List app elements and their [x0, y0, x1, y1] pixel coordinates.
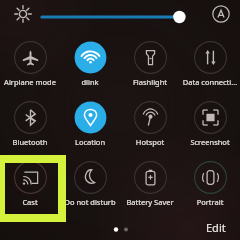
button[interactable]: Edit [202, 217, 230, 238]
button[interactable]: Brightness slider [40, 0, 205, 34]
staticText: Cast [0, 197, 60, 207]
button[interactable]: Location [60, 101, 120, 157]
staticText: Edit [206, 220, 226, 235]
button[interactable]: Portrait [180, 161, 240, 217]
button[interactable]: dlink [60, 41, 120, 97]
staticText: Data connecti… [180, 77, 240, 87]
staticText: Airplane mode [0, 77, 60, 87]
staticText: Do not disturb [60, 197, 120, 207]
staticText: Screenshot [180, 137, 240, 147]
button[interactable]: Brightness [10, 1, 36, 27]
staticText: Portrait [180, 197, 240, 207]
button[interactable]: Hotspot [120, 101, 180, 157]
staticText: Hotspot [120, 137, 180, 147]
staticText: Flashlight [120, 77, 180, 87]
staticText: Battery Saver [120, 197, 180, 207]
button[interactable]: Auto brightness [210, 3, 232, 25]
button[interactable]: Do not disturb [60, 161, 120, 217]
button[interactable]: Airplane mode [0, 41, 60, 97]
button[interactable]: Data connecti… [180, 41, 240, 97]
button[interactable]: Flashlight [120, 41, 180, 97]
button[interactable]: Bluetooth [0, 101, 60, 157]
button[interactable]: Battery Saver [120, 161, 180, 217]
button[interactable]: Cast [0, 161, 60, 217]
button[interactable]: Screenshot [180, 101, 240, 157]
staticText: Location [60, 137, 120, 147]
staticText: Bluetooth [0, 137, 60, 147]
staticText: dlink [60, 77, 120, 87]
